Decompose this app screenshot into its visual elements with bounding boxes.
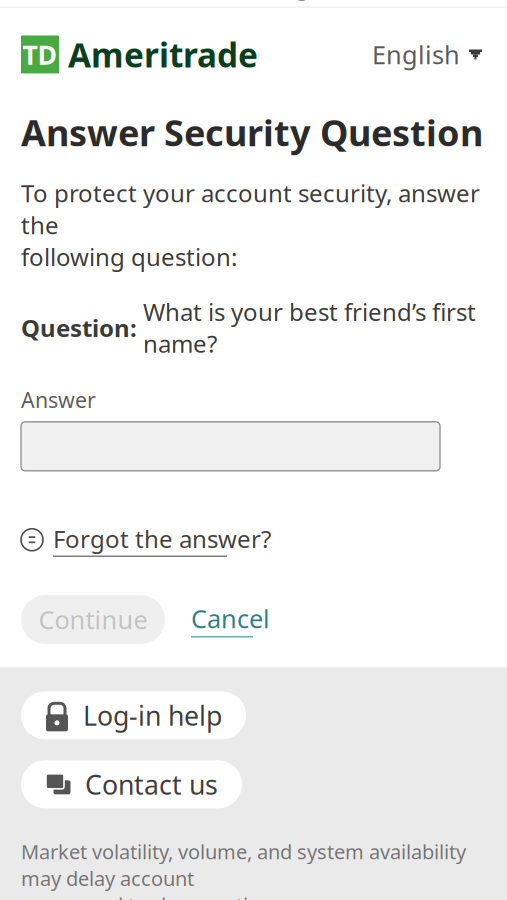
button[interactable]: English — [368, 30, 486, 79]
button[interactable]: Cancel — [0, 0, 119, 10]
button[interactable]: Log-in help — [21, 691, 246, 739]
staticText: Market volatility, volume, and system av… — [21, 838, 466, 900]
staticText: To protect your account security, answer… — [21, 177, 480, 273]
staticText: Cancel — [191, 602, 270, 635]
button[interactable]: Continue — [21, 595, 165, 644]
staticText: Continue — [38, 603, 147, 636]
staticText: English — [372, 38, 460, 71]
staticText: Secure Log-in — [160, 0, 347, 1]
staticText: What is your best friend’s first name? — [143, 296, 476, 359]
button[interactable]: Cancel — [191, 590, 270, 649]
staticText: Answer — [21, 385, 96, 414]
staticText: Forgot the answer? — [53, 523, 271, 555]
staticText: Log-in help — [83, 698, 222, 733]
staticText: Ameritrade — [68, 32, 258, 77]
staticText: Question: — [21, 312, 143, 344]
staticText: TD — [22, 37, 57, 72]
staticText: Contact us — [85, 767, 218, 802]
staticText: Answer Security Question — [21, 108, 483, 156]
button[interactable]: Forgot the answer? — [21, 517, 271, 563]
button[interactable]: Contact us — [21, 760, 242, 808]
